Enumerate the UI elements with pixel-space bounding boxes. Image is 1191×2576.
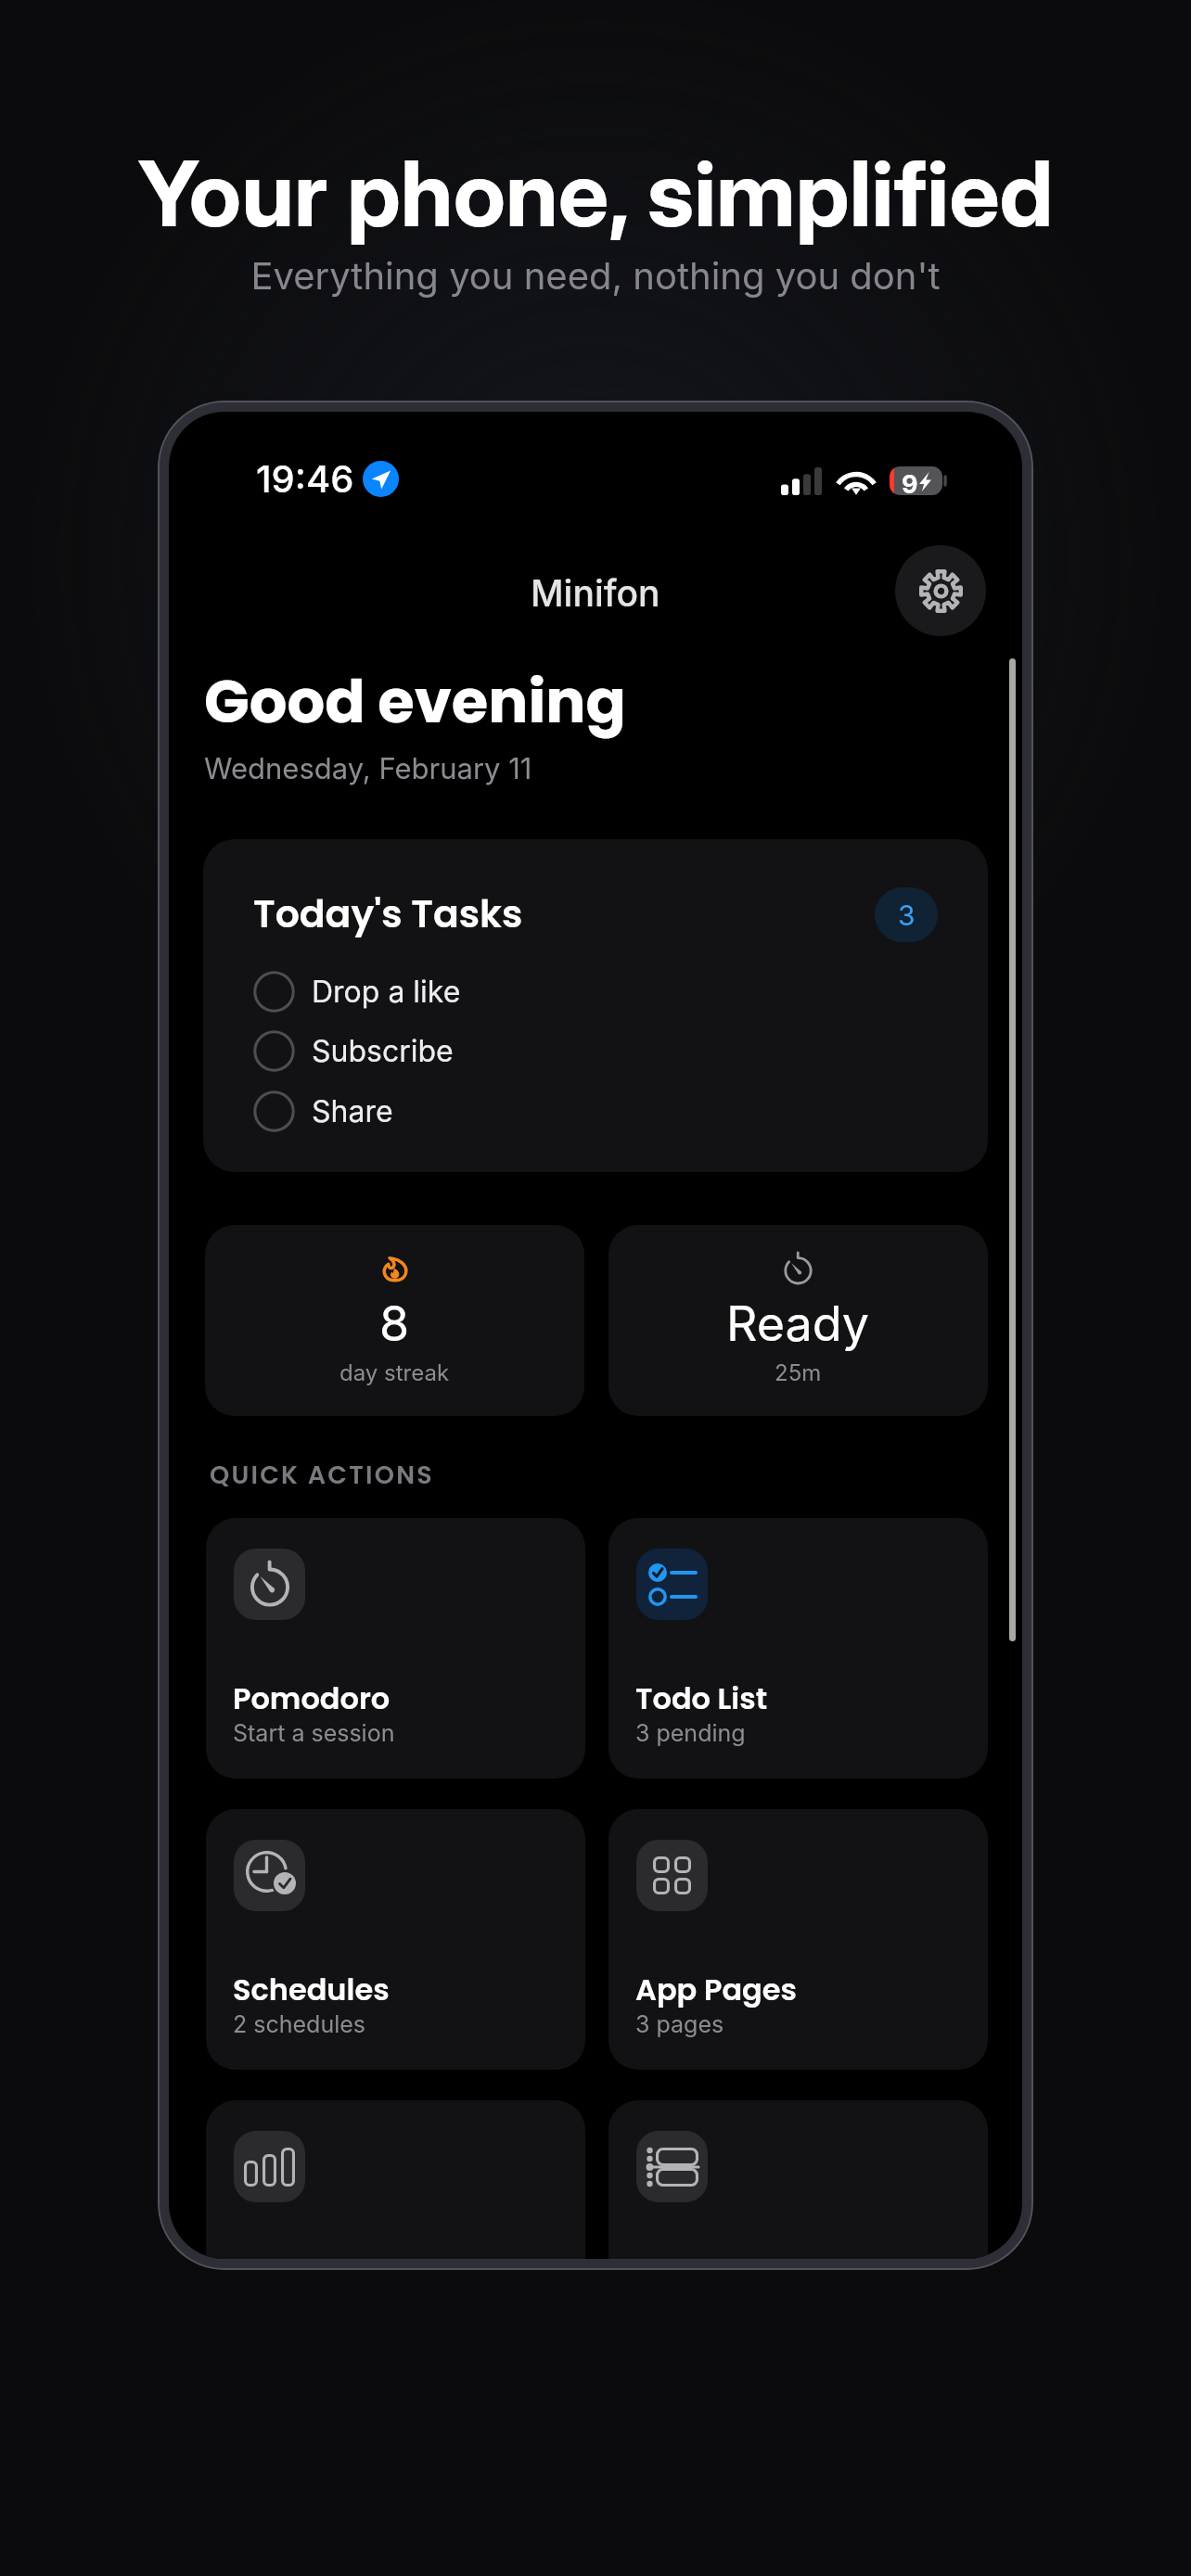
button[interactable]: Pomodoro [206,1518,585,1779]
staticText: 3 pages [635,2010,724,2038]
button[interactable]: Ready [608,1225,988,1416]
staticText: Good evening [204,660,626,744]
button[interactable]: App Pages [608,1809,988,2070]
staticText: Everything you need, nothing you don't [0,253,1191,298]
staticText: Ready [726,1294,870,1353]
staticText: Your phone, simplified [0,139,1191,248]
staticText: 19:46 [256,456,354,501]
button[interactable] [206,2100,585,2259]
staticText: QUICK ACTIONS [210,1458,434,1493]
button[interactable]: Drop a like [253,962,856,1021]
button[interactable]: Settings [895,545,986,636]
staticText: 8 [379,1294,410,1353]
staticText: Subscribe [312,1033,454,1069]
staticText: 25m [775,1359,822,1386]
staticText: Wednesday, February 11 [204,751,532,786]
button[interactable]: Todo List [608,1518,988,1779]
staticText: Minifon [531,571,660,615]
staticText: Pomodoro [233,1677,391,1719]
staticText: App Pages [635,1969,797,2010]
staticText: Start a session [233,1719,395,1747]
staticText: Schedules [233,1969,390,2010]
staticText: 3 pending [635,1719,746,1747]
button[interactable]: Schedules [206,1809,585,2070]
button[interactable]: Share [253,1081,856,1141]
staticText: 2 schedules [233,2010,366,2038]
button[interactable]: Today's Tasks [203,839,988,1172]
button[interactable] [608,2100,988,2259]
staticText: 3 [898,899,916,932]
button[interactable]: 8 [205,1225,584,1416]
staticText: Share [312,1093,393,1129]
staticText: Today's Tasks [253,887,523,940]
staticText: day streak [339,1359,450,1386]
button[interactable]: Subscribe [253,1021,856,1080]
staticText: Drop a like [312,974,461,1010]
staticText: Todo List [635,1677,768,1719]
staticText: 9 [902,469,918,498]
